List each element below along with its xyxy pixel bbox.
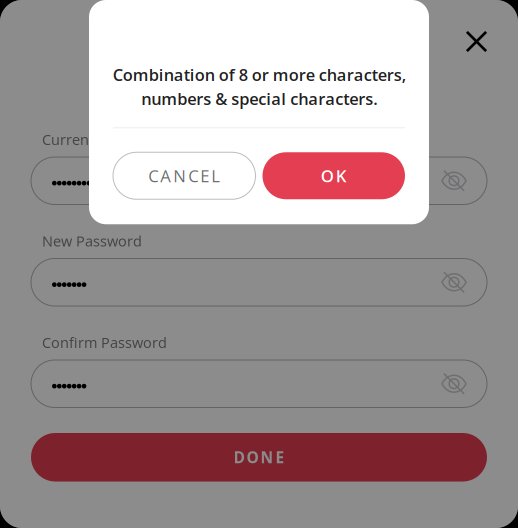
button[interactable]: Show Current Password [431,157,477,204]
staticText: Current Password [42,129,164,149]
staticText: Confirm Password [42,332,167,352]
button[interactable]: Show New Password [431,258,477,306]
staticText: O K [321,164,347,187]
staticText: New Password [42,231,142,251]
button[interactable]: Show Confirm Password [431,360,477,407]
button[interactable]: C A N C E L [113,152,255,199]
staticText: Combination of 8 or more characters, num… [112,63,405,110]
button[interactable]: D O N E [31,433,487,481]
button[interactable]: Close [454,19,498,63]
button[interactable]: O K [262,152,405,199]
staticText: D O N E [233,447,284,468]
staticText: C A N C E L [148,164,220,187]
